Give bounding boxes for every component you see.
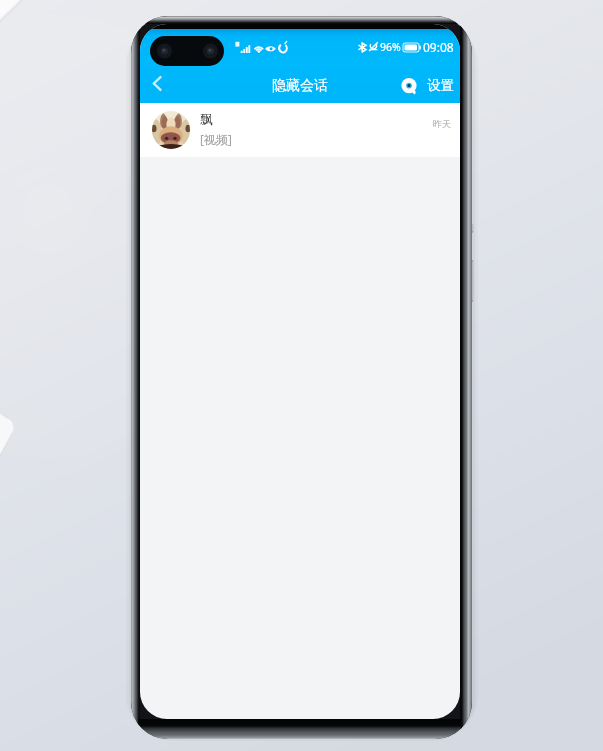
- button[interactable]: 飘: [140, 103, 460, 157]
- staticText: 隐藏会话: [272, 77, 328, 95]
- button[interactable]: Back: [140, 68, 180, 103]
- staticText: 09:08: [423, 39, 454, 55]
- staticText: [视频]: [200, 131, 232, 147]
- button[interactable]: 设置: [401, 68, 460, 103]
- staticText: 96%: [380, 40, 401, 54]
- staticText: 设置: [427, 77, 454, 94]
- staticText: 飘: [200, 111, 213, 127]
- staticText: 昨天: [433, 118, 451, 129]
